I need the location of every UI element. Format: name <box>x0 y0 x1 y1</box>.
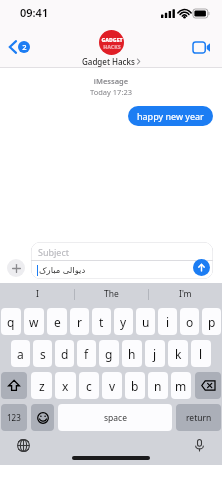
staticText: q <box>7 314 15 330</box>
button[interactable]: d <box>55 340 74 367</box>
button[interactable]: y <box>114 308 133 335</box>
button[interactable]: z <box>31 372 52 399</box>
staticText: p <box>208 314 216 330</box>
button[interactable]: r <box>70 308 89 335</box>
button[interactable]: GADGET <box>82 30 140 67</box>
staticText: g <box>105 346 113 362</box>
staticText: space <box>104 412 127 424</box>
staticText: o <box>186 314 194 330</box>
staticText: a <box>17 346 24 362</box>
staticText: m <box>175 378 187 394</box>
staticText: d <box>61 346 69 362</box>
button[interactable]: m <box>171 372 191 399</box>
button[interactable]: s <box>33 340 52 367</box>
button[interactable]: t <box>92 308 111 335</box>
button[interactable]: Send <box>193 259 210 276</box>
staticText: c <box>86 378 92 394</box>
button[interactable]: q <box>1 308 21 335</box>
button[interactable]: x <box>55 372 76 399</box>
staticText: z <box>39 378 45 394</box>
staticText: The <box>104 288 119 300</box>
staticText: دیوالی مبارک <box>39 264 86 276</box>
button[interactable]: return <box>176 404 221 431</box>
staticText: n <box>154 378 162 394</box>
staticText: f <box>84 346 89 362</box>
button[interactable]: FaceTime video call <box>189 38 214 57</box>
button[interactable]: Shift <box>1 372 27 399</box>
staticText: 09:41 <box>20 5 49 20</box>
staticText: s <box>40 346 46 362</box>
button[interactable]: I <box>0 283 74 305</box>
button[interactable]: e <box>47 308 67 335</box>
button[interactable]: g <box>99 340 119 367</box>
staticText: u <box>142 314 150 330</box>
button[interactable]: Dictation <box>192 436 207 455</box>
button[interactable]: p <box>202 308 221 335</box>
button[interactable]: دیوالی مبارک <box>31 261 213 279</box>
staticText: GADGET <box>101 36 123 43</box>
button[interactable]: f <box>77 340 96 367</box>
button[interactable]: Emoji <box>31 404 54 431</box>
staticText: I'm <box>179 288 192 300</box>
staticText: l <box>199 346 203 362</box>
staticText: Subject <box>38 246 70 258</box>
button[interactable]: Back <box>6 36 33 58</box>
button[interactable]: 123 <box>1 404 27 431</box>
staticText: e <box>54 314 61 330</box>
button[interactable]: I'm <box>149 283 222 305</box>
staticText: j <box>153 346 157 362</box>
staticText: I <box>36 288 39 300</box>
button[interactable]: v <box>102 372 122 399</box>
button[interactable]: Switch keyboard language <box>14 436 33 455</box>
button[interactable]: o <box>180 308 199 335</box>
staticText: b <box>131 378 139 394</box>
button[interactable]: happy new year <box>128 106 213 126</box>
staticText: k <box>175 346 182 362</box>
button[interactable]: l <box>191 340 211 367</box>
button[interactable]: Subject <box>31 242 213 261</box>
button[interactable]: i <box>158 308 177 335</box>
staticText: return <box>186 412 212 424</box>
staticText: iMessage <box>0 76 222 86</box>
staticText: h <box>128 346 136 362</box>
button[interactable]: w <box>24 308 44 335</box>
button[interactable]: j <box>145 340 165 367</box>
button[interactable]: u <box>136 308 155 335</box>
button[interactable]: k <box>168 340 188 367</box>
button[interactable]: h <box>122 340 142 367</box>
staticText: y <box>120 314 127 330</box>
button[interactable]: space <box>58 404 172 431</box>
staticText: 123 <box>7 412 21 423</box>
staticText: v <box>109 378 116 394</box>
button[interactable]: b <box>125 372 145 399</box>
button[interactable]: n <box>148 372 168 399</box>
staticText: 2 <box>22 42 27 52</box>
button[interactable]: Delete <box>195 372 221 399</box>
staticText: Today 17:23 <box>0 87 222 97</box>
staticText: t <box>99 314 104 330</box>
staticText: w <box>29 314 39 330</box>
button[interactable]: c <box>79 372 99 399</box>
staticText: x <box>62 378 69 394</box>
staticText: i <box>166 314 170 330</box>
button[interactable]: a <box>11 340 30 367</box>
staticText: Gadget Hacks <box>82 56 135 67</box>
staticText: HACKS <box>103 43 121 50</box>
staticText: happy new year <box>137 110 204 122</box>
button[interactable]: The <box>75 283 148 305</box>
button[interactable]: Add attachment <box>7 259 25 277</box>
staticText: r <box>77 314 82 330</box>
